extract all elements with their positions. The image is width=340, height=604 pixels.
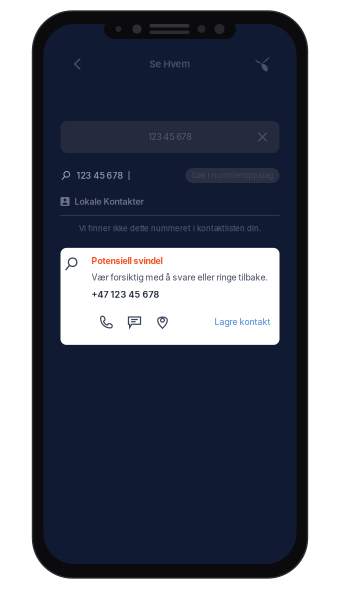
button[interactable]: Lagre kontakt: [214, 314, 270, 329]
button[interactable]: Ring: [96, 314, 116, 329]
button[interactable]: Tilbake: [62, 51, 92, 77]
button[interactable]: Telenor: [247, 51, 277, 77]
staticText: Lokale Kontakter: [74, 196, 143, 207]
button[interactable]: Send melding: [124, 314, 144, 329]
staticText: Lagre kontakt: [214, 317, 270, 327]
staticText: Vær forsiktig med å svare eller ringe ti…: [91, 272, 267, 283]
button[interactable]: 123 45 678: [60, 121, 279, 153]
staticText: Potensiell svindel: [91, 256, 162, 266]
staticText: Søk i nummeroppslag: [191, 171, 273, 180]
staticText: +47 123 45 678: [91, 289, 159, 300]
staticText: 123 45 678: [148, 132, 191, 142]
staticText: 123 45 678: [76, 170, 123, 181]
staticText: Se Hvem: [149, 58, 190, 70]
button[interactable]: Søk i nummeroppslag: [185, 168, 279, 183]
staticText: Vi finner ikke dette nummeret i kontaktl…: [79, 224, 261, 233]
button[interactable]: Vis i kart: [152, 314, 172, 329]
